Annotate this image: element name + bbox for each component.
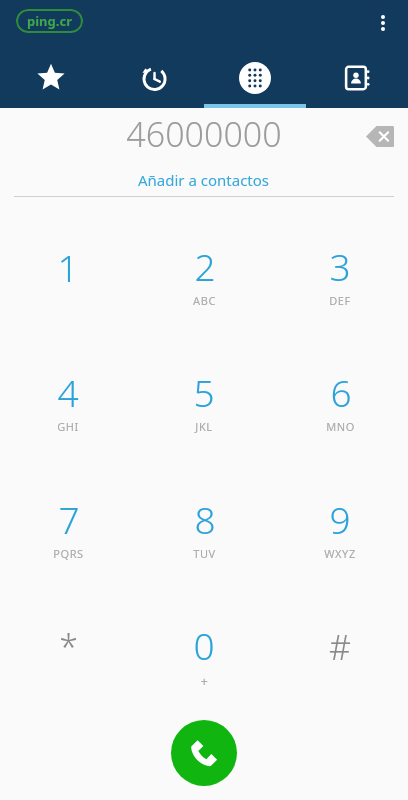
staticText: JKL: [195, 419, 213, 434]
button[interactable]: 3: [272, 211, 408, 337]
button[interactable]: ping.cr: [16, 9, 83, 33]
staticText: WXYZ: [324, 546, 356, 561]
staticText: 9: [329, 494, 351, 544]
button[interactable]: Contacts: [306, 56, 408, 108]
button[interactable]: Call history: [102, 56, 204, 108]
button[interactable]: 5: [136, 337, 272, 464]
button[interactable]: Backspace: [358, 114, 402, 158]
staticText: PQRS: [53, 546, 84, 561]
staticText: 7: [58, 494, 80, 544]
staticText: 8: [194, 494, 216, 544]
staticText: 6: [330, 367, 352, 417]
staticText: 2: [194, 241, 216, 291]
button[interactable]: More options: [362, 2, 404, 44]
staticText: 3: [329, 241, 351, 291]
button[interactable]: 7: [0, 464, 136, 591]
staticText: 46000000: [126, 111, 282, 157]
staticText: ping.cr: [27, 12, 72, 30]
staticText: +: [200, 672, 209, 690]
button[interactable]: 0: [136, 591, 272, 718]
staticText: Añadir a contactos: [138, 170, 270, 190]
staticText: #: [329, 624, 351, 670]
button[interactable]: Dial pad: [204, 56, 306, 108]
staticText: DEF: [329, 293, 351, 308]
staticText: 4: [57, 367, 79, 417]
button[interactable]: 2: [136, 211, 272, 337]
button[interactable]: 1: [0, 211, 136, 337]
button[interactable]: 4: [0, 337, 136, 464]
button[interactable]: #: [272, 591, 408, 718]
staticText: MNO: [326, 419, 355, 434]
staticText: ABC: [193, 293, 216, 308]
staticText: GHI: [57, 419, 79, 434]
button[interactable]: Call: [171, 720, 237, 786]
button[interactable]: 9: [272, 464, 408, 591]
button[interactable]: 8: [136, 464, 272, 591]
staticText: *: [59, 624, 78, 670]
button[interactable]: Favorites: [0, 56, 102, 108]
staticText: 1: [57, 242, 79, 292]
button[interactable]: Añadir a contactos: [128, 168, 280, 192]
button[interactable]: *: [0, 591, 136, 718]
staticText: 5: [193, 367, 215, 417]
button[interactable]: 6: [272, 337, 408, 464]
staticText: TUV: [193, 546, 216, 561]
staticText: 0: [193, 620, 215, 670]
